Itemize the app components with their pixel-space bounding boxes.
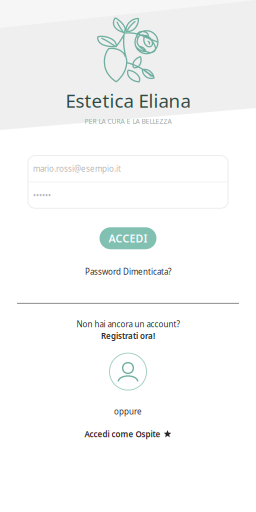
staticText: Registrati ora!	[101, 330, 155, 341]
staticText: oppure	[114, 406, 142, 417]
staticText: mario.rossi@esempio.it	[33, 163, 121, 174]
button[interactable]: mario.rossi@esempio.it	[28, 156, 228, 182]
staticText: Accedi come Ospite	[84, 429, 160, 439]
button[interactable]: ••••••	[28, 182, 228, 208]
button[interactable]: Password Dimenticata?	[85, 266, 171, 277]
button[interactable]: Registrati ora!	[101, 330, 155, 341]
button[interactable]: Accedi come ospite	[109, 353, 146, 390]
staticText: Password Dimenticata?	[85, 266, 171, 277]
staticText: ACCEDI	[108, 231, 147, 245]
button[interactable]: ACCEDI	[99, 227, 156, 249]
staticText: ••••••	[33, 190, 51, 200]
staticText: Non hai ancora un account?	[76, 319, 179, 329]
button[interactable]: Accedi come Ospite	[84, 429, 171, 439]
staticText: Estetica Eliana	[65, 88, 190, 113]
staticText: PER LA CURA E LA BELLEZZA	[84, 117, 171, 126]
